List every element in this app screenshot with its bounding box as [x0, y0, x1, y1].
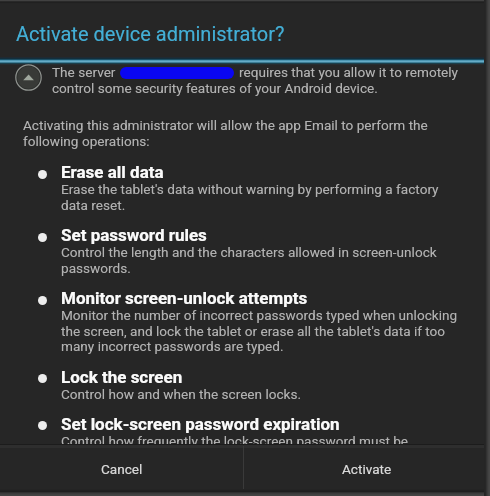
- staticText: passwords.: [61, 260, 131, 276]
- staticText: Activate device administrator?: [16, 22, 285, 45]
- staticText: Set password rules: [61, 225, 207, 245]
- staticText: Control how frequently the lock-screen p…: [61, 433, 409, 449]
- staticText: Monitor screen-unlock attempts: [61, 288, 308, 308]
- button[interactable]: Cancel: [0, 448, 245, 496]
- staticText: data reset.: [61, 197, 126, 213]
- staticText: Monitor the number of incorrect password…: [61, 307, 458, 323]
- staticText: The server: [52, 64, 116, 80]
- staticText: Control how and when the screen locks.: [61, 386, 302, 402]
- staticText: Erase all data: [61, 162, 164, 182]
- staticText: control some security features of your A…: [52, 80, 378, 96]
- button[interactable]: Activate: [245, 448, 490, 496]
- staticText: Erase the tablet's data without warning …: [61, 181, 439, 197]
- staticText: Set lock-screen password expiration: [61, 414, 340, 434]
- staticText: requires that you allow it to remotely: [239, 64, 459, 80]
- other: App icon: [15, 64, 42, 91]
- staticText: Control the length and the characters al…: [61, 244, 437, 260]
- staticText: Activating this administrator will allow…: [23, 117, 428, 133]
- staticText: many incorrect passwords are typed.: [61, 338, 284, 354]
- staticText: following operations:: [23, 133, 150, 149]
- staticText: Cancel: [101, 461, 143, 477]
- staticText: Activate: [342, 461, 392, 477]
- staticText: Lock the screen: [61, 367, 183, 387]
- staticText: the screen, and lock the tablet or erase…: [61, 323, 446, 339]
